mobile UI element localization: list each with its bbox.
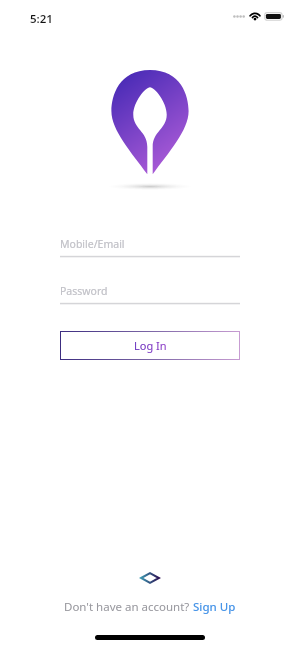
staticText: Don't have an account? — [64, 599, 193, 615]
button[interactable]: Log In — [60, 331, 240, 360]
button[interactable]: Developer logo — [140, 572, 160, 584]
button[interactable]: Mobile/Email — [60, 236, 240, 258]
staticText: Sign Up — [193, 599, 236, 615]
button[interactable]: Sign Up — [193, 599, 236, 615]
staticText: Password — [60, 284, 108, 298]
staticText: 5:21 — [30, 11, 53, 27]
staticText: Mobile/Email — [60, 237, 125, 251]
button[interactable]: Password — [60, 283, 240, 305]
staticText: Log In — [134, 338, 167, 353]
